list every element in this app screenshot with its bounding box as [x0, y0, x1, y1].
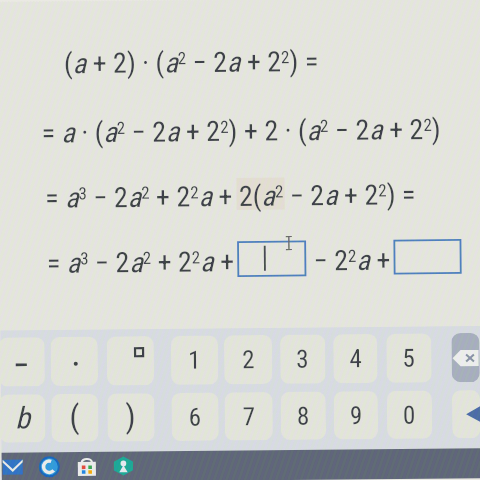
button[interactable]: 5 — [386, 333, 432, 383]
button[interactable]: ( — [51, 394, 99, 442]
button[interactable]: 9 — [334, 391, 378, 439]
staticText: − 22a + — [307, 244, 391, 277]
staticText: b — [15, 400, 30, 435]
button[interactable]: 6 — [171, 392, 219, 441]
staticText: 7 — [243, 402, 256, 431]
staticText: 5 — [402, 343, 416, 373]
staticText: (a + 2) · (a2 − 2a + 22) = — [64, 45, 319, 80]
button[interactable]: Browser — [39, 456, 60, 477]
button[interactable] — [451, 333, 480, 382]
button[interactable]: 1 — [171, 335, 218, 385]
button[interactable]: Answer field — [237, 240, 306, 277]
button[interactable] — [50, 337, 98, 386]
button[interactable]: 7 — [224, 392, 273, 441]
button[interactable]: App — [113, 455, 134, 477]
button[interactable]: ) — [107, 393, 155, 442]
button[interactable]: b — [0, 394, 46, 443]
button[interactable]: 0 — [387, 390, 432, 439]
button[interactable]: Move left — [452, 390, 480, 438]
button[interactable]: Answer field — [393, 239, 462, 275]
button[interactable]: 3 — [280, 334, 326, 384]
staticText: 6 — [188, 403, 202, 432]
staticText: 9 — [350, 401, 363, 430]
other: Move left — [466, 405, 480, 423]
staticText: = a3 − 2a2 + 22a + 2(a2 − 2a + 22) = — [45, 178, 416, 215]
button[interactable]: 8 — [280, 391, 326, 440]
button[interactable]: 2 — [224, 335, 272, 384]
staticText: = a · (a2 − 2a + 22) + 2 · (a2 − 2a + 22… — [41, 113, 441, 150]
button[interactable]: Mail — [2, 456, 23, 478]
button[interactable] — [107, 336, 154, 385]
button[interactable]: 4 — [333, 334, 378, 383]
button[interactable] — [0, 337, 45, 387]
staticText: 0 — [403, 401, 416, 430]
staticText: 1 — [188, 346, 201, 375]
staticText: 3 — [296, 345, 309, 374]
staticText: ( — [69, 398, 81, 436]
staticText: 8 — [297, 402, 310, 431]
staticText: ) — [125, 397, 137, 435]
button[interactable]: Store — [76, 456, 97, 477]
staticText: 4 — [349, 344, 362, 373]
staticText: 2 — [242, 345, 255, 374]
staticText: = a3 − 2a2 + 22a + — [47, 245, 234, 280]
